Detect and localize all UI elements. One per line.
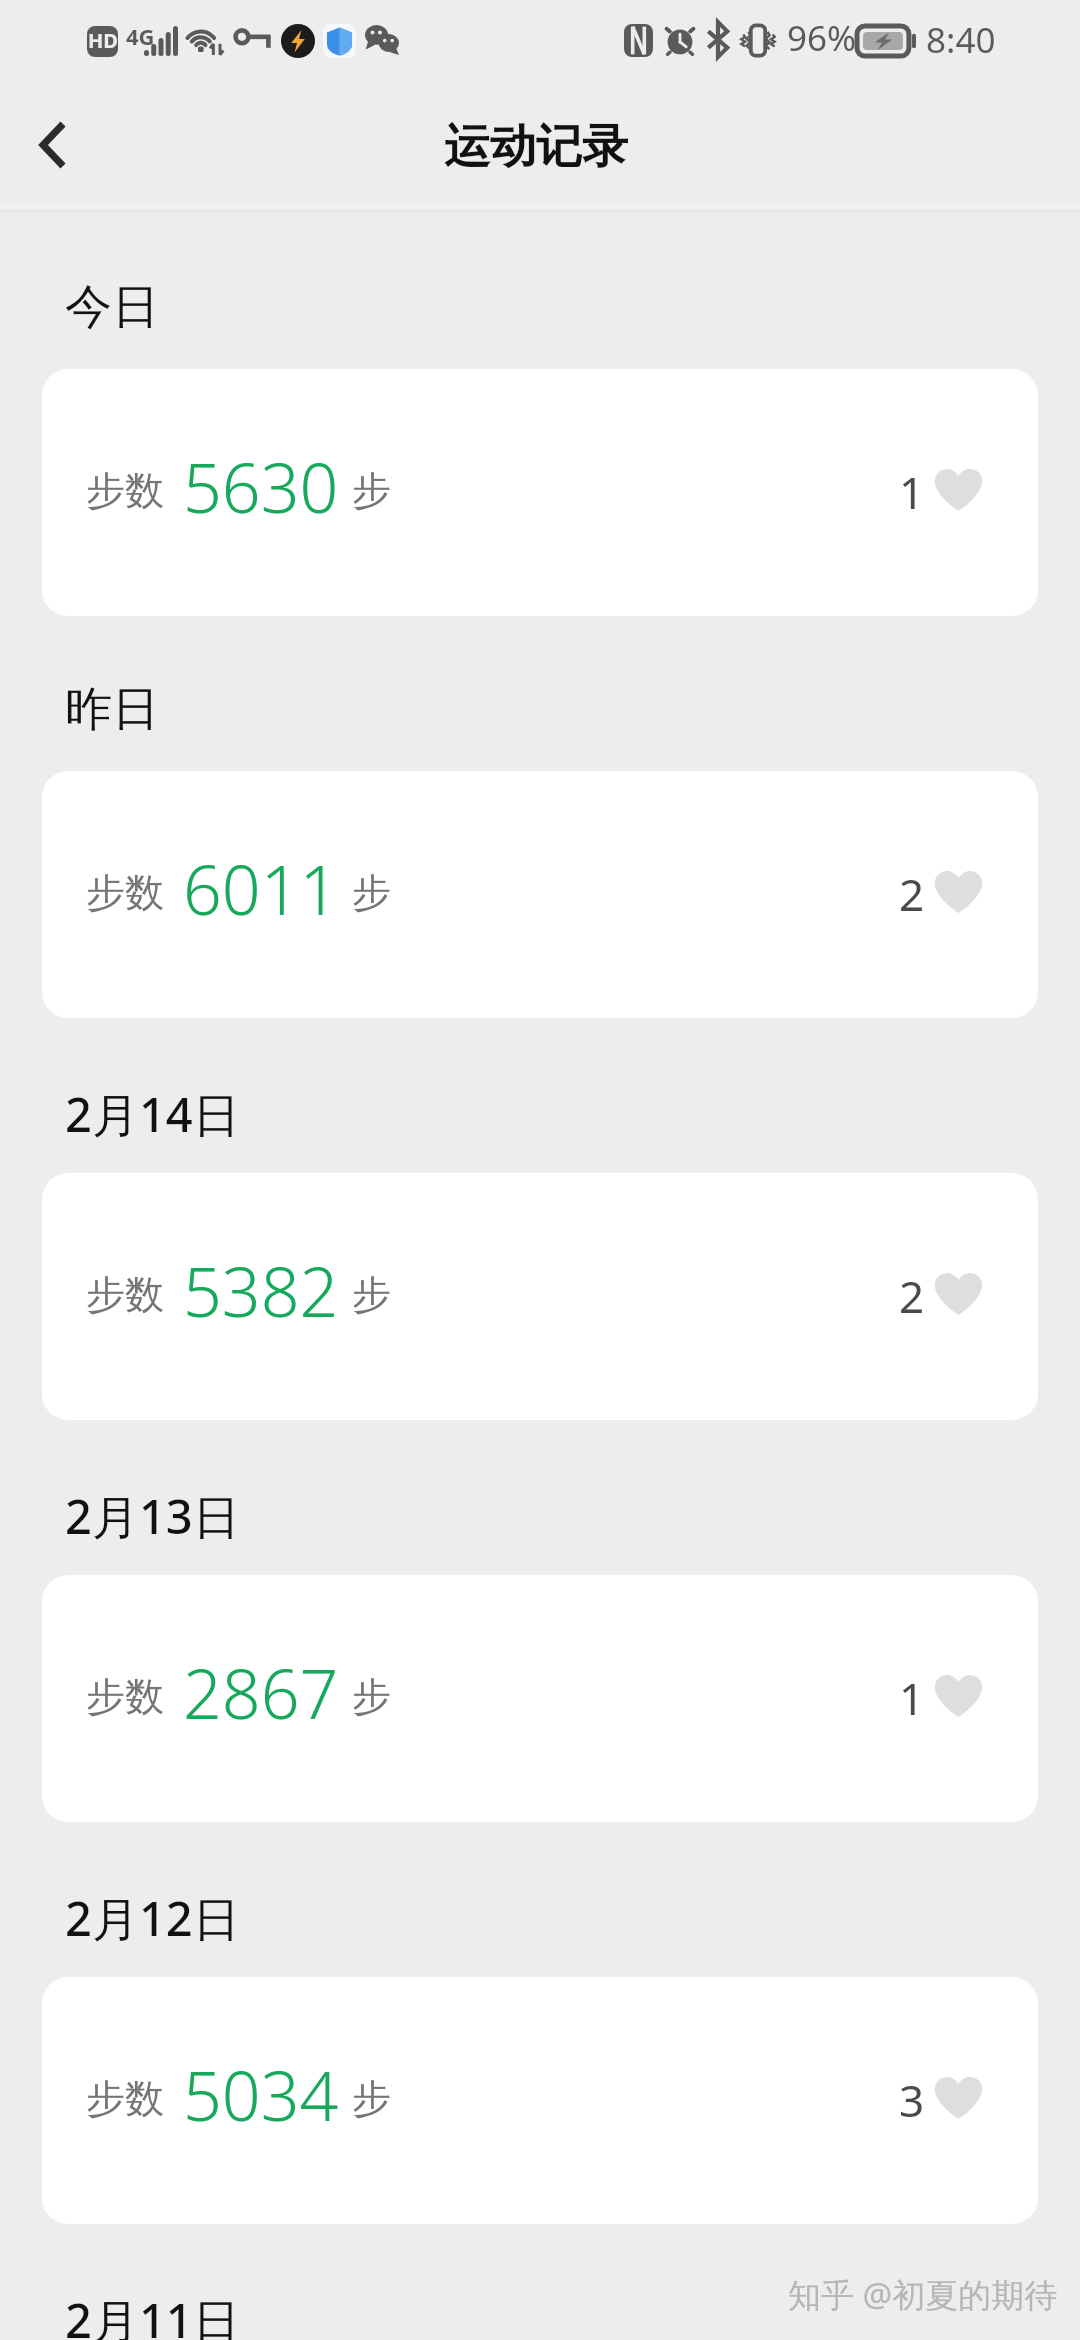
staticText: 4G <box>126 21 155 51</box>
button[interactable]: 步数 <box>42 771 1038 1018</box>
button[interactable]: Like, 1 likes <box>897 452 985 524</box>
button[interactable]: 步数 <box>42 1977 1038 2224</box>
staticText: 步 <box>352 2074 391 2123</box>
staticText: 知乎 @初夏的期待 <box>788 2272 1058 2317</box>
staticText: 2 <box>899 864 925 924</box>
staticText: 2 <box>899 1266 925 1326</box>
staticText: 2867 <box>183 1646 339 1739</box>
staticText: 5630 <box>183 440 339 533</box>
button[interactable]: Like, 2 likes <box>897 854 985 926</box>
button[interactable]: Like, 2 likes <box>897 1256 985 1328</box>
button[interactable]: Like, 1 likes <box>897 1658 985 1730</box>
staticText: 步 <box>352 1270 391 1319</box>
staticText: 步 <box>352 868 391 917</box>
staticText: 昨日 <box>65 680 159 736</box>
staticText: 步数 <box>86 1672 164 1721</box>
staticText: 2月13日 <box>65 1484 240 1540</box>
staticText: 1 <box>899 462 925 522</box>
staticText: 步数 <box>86 466 164 515</box>
staticText: 5382 <box>183 1244 339 1337</box>
staticText: 2月12日 <box>65 1886 240 1942</box>
staticText: 96% <box>787 14 857 62</box>
staticText: 运动记录 <box>444 118 628 176</box>
staticText: 2月14日 <box>65 1082 240 1138</box>
staticText: 3 <box>899 2070 925 2130</box>
button[interactable]: Like, 3 likes <box>897 2060 985 2132</box>
button[interactable]: 步数 <box>42 1575 1038 1822</box>
button[interactable]: Back <box>0 84 106 206</box>
staticText: 步数 <box>86 868 164 917</box>
staticText: 今日 <box>65 278 159 334</box>
staticText: 2月11日 <box>65 2288 240 2340</box>
staticText: 步数 <box>86 1270 164 1319</box>
staticText: HD <box>88 27 118 54</box>
staticText: 步数 <box>86 2074 164 2123</box>
staticText: 1 <box>899 1668 925 1728</box>
button[interactable]: 步数 <box>42 369 1038 616</box>
staticText: 步 <box>352 1672 391 1721</box>
staticText: 5034 <box>183 2048 339 2141</box>
staticText: 步 <box>352 466 391 515</box>
button[interactable]: 步数 <box>42 1173 1038 1420</box>
staticText: 8:40 <box>926 16 996 64</box>
staticText: 6011 <box>183 842 339 935</box>
